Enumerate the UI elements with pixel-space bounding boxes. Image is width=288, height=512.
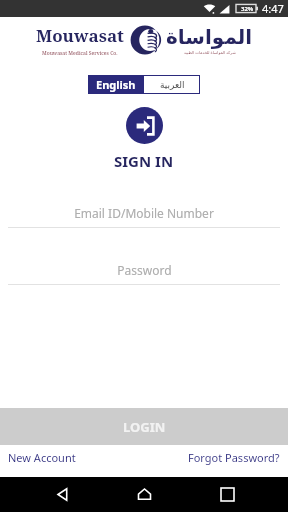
staticText: العربية [160, 80, 185, 90]
staticText: 32% [241, 5, 254, 13]
button[interactable]: Email ID/Mobile Number [8, 199, 280, 228]
button[interactable]: Recent apps [206, 477, 248, 512]
staticText: LOGIN [123, 418, 166, 436]
button[interactable]: Home [123, 477, 165, 512]
staticText: Email ID/Mobile Number [74, 205, 214, 221]
staticText: شركة المواساة للخدمات الطبية [184, 50, 236, 55]
staticText: Mouwasat [36, 24, 124, 47]
button[interactable]: Sign in [126, 107, 163, 144]
staticText: Password [117, 262, 172, 278]
staticText: English [96, 77, 136, 92]
staticText: New Account [8, 450, 76, 465]
staticText: Mouwasat Medical Services Co. [42, 50, 118, 57]
button[interactable]: English [88, 75, 144, 94]
button[interactable]: LOGIN [0, 408, 288, 445]
button[interactable]: New Account [8, 450, 76, 465]
staticText: Forgot Password? [188, 450, 280, 465]
staticText: 4:47 [262, 1, 284, 16]
staticText: SIGN IN [114, 151, 174, 171]
button[interactable]: Forgot Password? [188, 450, 280, 465]
button[interactable]: Password [8, 256, 280, 285]
staticText: المواساة [166, 25, 253, 48]
button[interactable]: Back [41, 477, 83, 512]
button[interactable]: العربية [144, 75, 200, 94]
